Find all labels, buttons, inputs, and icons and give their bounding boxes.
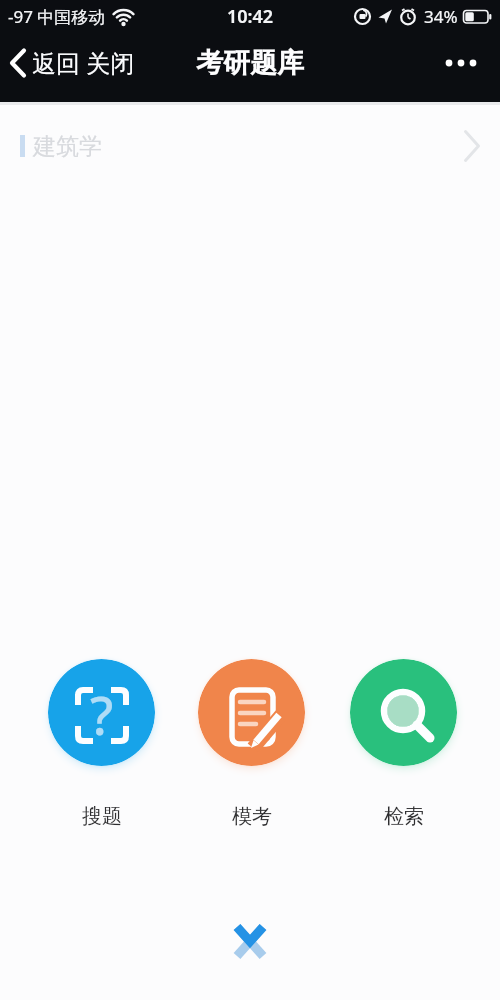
staticText: 检索 [384,804,424,829]
staticText: ? [90,679,114,750]
staticText: 搜题 [82,804,122,829]
staticText: 34% [424,5,458,28]
staticText: 建筑学 [33,132,102,161]
staticText: 10:42 [227,4,274,29]
staticText: 模考 [232,804,272,829]
staticText: -97 中国移动 [8,5,106,28]
staticText: 考研题库 [196,46,304,80]
staticText: 返回 关闭 [32,46,135,79]
